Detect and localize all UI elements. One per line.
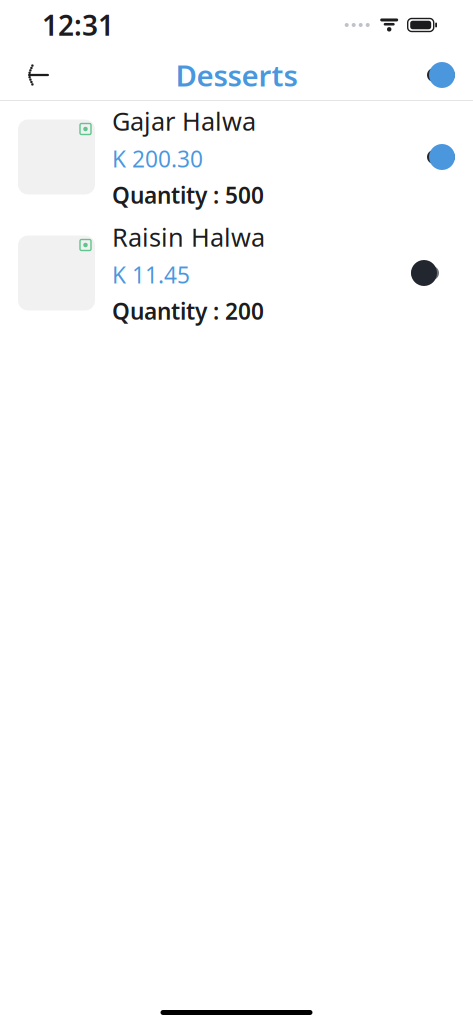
staticText: Quantity : 200 (112, 296, 264, 326)
staticText: 12:31 (42, 6, 114, 44)
staticText: Raisin Halwa (112, 220, 265, 254)
staticText: K 11.45 (112, 260, 190, 290)
button[interactable]: Toggle category availability (411, 53, 455, 97)
staticText: K 200.30 (112, 144, 203, 174)
staticText: Desserts (175, 55, 297, 94)
staticText: Gajar Halwa (112, 104, 256, 138)
button[interactable]: Raisin Halwa (0, 223, 473, 323)
button[interactable]: Back (18, 53, 62, 97)
button[interactable]: Gajar Halwa (0, 107, 473, 207)
staticText: Quantity : 500 (112, 180, 264, 210)
